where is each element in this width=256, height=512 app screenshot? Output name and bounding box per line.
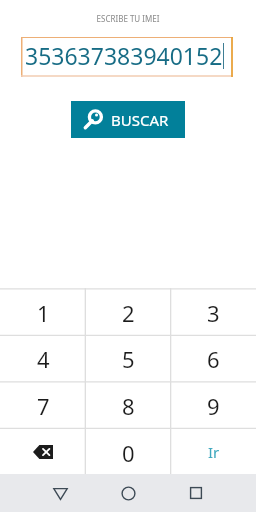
button[interactable]: 0 [86,427,171,474]
staticText: 9 [207,391,220,421]
button[interactable]: BUSCAR [71,101,185,138]
staticText: 7 [37,391,50,421]
staticText: 3 [207,298,220,328]
staticText: 6 [207,344,220,374]
staticText: 4 [37,344,50,374]
staticText: 0 [122,438,135,468]
staticText: Ir [208,442,220,462]
button[interactable]: 353637383940152 [21,37,233,77]
button[interactable]: 7 [0,380,86,427]
staticText: 1 [37,298,50,328]
button[interactable]: 3 [171,288,256,334]
button[interactable]: 9 [171,380,256,427]
staticText: 5 [122,344,135,374]
staticText: BUSCAR [111,110,169,130]
staticText: 8 [122,391,135,421]
button[interactable]: Home [94,474,162,512]
button[interactable]: 6 [171,334,256,380]
staticText: 353637383940152 [25,40,223,71]
button[interactable]: 4 [0,334,86,380]
staticText: ESCRIBE TU IMEI [0,13,256,24]
staticText: 2 [122,298,135,328]
button[interactable]: 1 [0,288,86,334]
button[interactable]: Ir [171,427,256,474]
button[interactable]: Back [26,474,94,512]
button[interactable]: 2 [86,288,171,334]
button[interactable]: 8 [86,380,171,427]
button[interactable]: Recent apps [162,474,230,512]
button[interactable]: Backspace [0,427,86,474]
button[interactable]: 5 [86,334,171,380]
